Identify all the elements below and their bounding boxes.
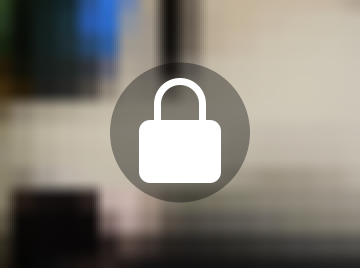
button[interactable]: Unlock <box>110 62 250 202</box>
